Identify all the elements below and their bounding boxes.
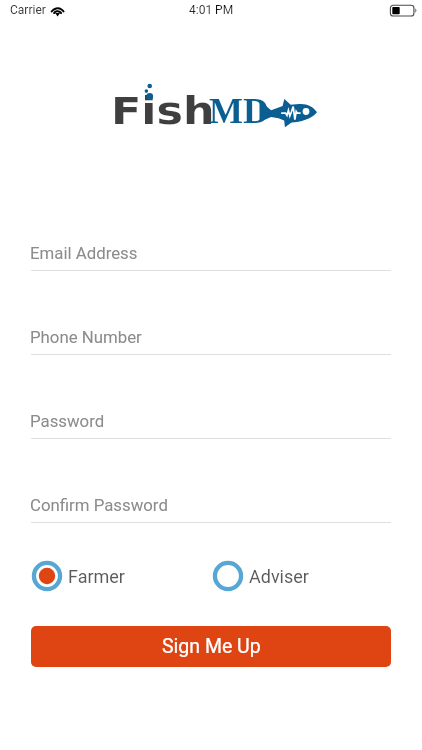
- other: Wi-Fi signal: [50, 6, 66, 16]
- button[interactable]: Sign Me Up: [31, 626, 391, 667]
- button[interactable]: Password: [31, 406, 391, 436]
- button[interactable]: Farmer: [31, 558, 125, 594]
- staticText: Adviser: [249, 566, 309, 587]
- staticText: Sign Me Up: [162, 635, 261, 658]
- staticText: 4:01 PM: [189, 3, 234, 17]
- button[interactable]: Adviser: [212, 558, 309, 594]
- staticText: Password: [30, 411, 105, 431]
- staticText: Farmer: [68, 566, 125, 587]
- staticText: Email Address: [30, 243, 138, 263]
- staticText: Confirm Password: [30, 495, 168, 515]
- staticText: Fish: [111, 90, 215, 133]
- staticText: MD: [209, 91, 269, 131]
- button[interactable]: Phone Number: [31, 322, 391, 352]
- other: Battery: [388, 4, 418, 18]
- staticText: Carrier: [10, 3, 46, 17]
- staticText: Phone Number: [30, 327, 142, 347]
- button[interactable]: Confirm Password: [31, 490, 391, 520]
- button[interactable]: Email Address: [31, 238, 391, 268]
